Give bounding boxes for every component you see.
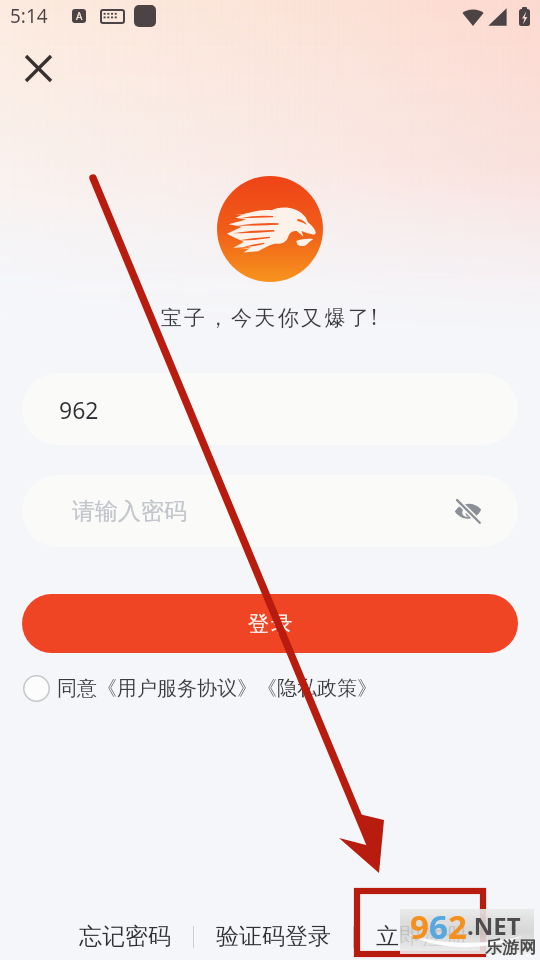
staticText: 6 (429, 904, 448, 949)
staticText: 9 (410, 904, 429, 949)
button[interactable]: 962 (22, 373, 518, 445)
button[interactable]: 登录 (22, 594, 518, 653)
button[interactable]: 验证码登录 (194, 914, 353, 959)
button[interactable]: Show password (446, 489, 490, 533)
staticText: 同意《用户服务协议》《隐私政策》 (57, 676, 377, 701)
staticText: 乐游网 (485, 937, 536, 958)
staticText: 登录 (247, 611, 293, 637)
staticText: 宝子，今天你又爆了! (0, 303, 540, 332)
button[interactable]: 同意《用户服务协议》《隐私政策》 (23, 675, 377, 702)
staticText: 请输入密码 (72, 497, 187, 526)
button[interactable]: Close (14, 44, 62, 92)
staticText: A (76, 9, 83, 23)
staticText: 962 (59, 394, 99, 425)
staticText: .NET (467, 909, 521, 942)
staticText: 5:14 (10, 3, 48, 29)
button[interactable]: 立即注册 (354, 914, 490, 959)
button[interactable]: 忘记密码 (57, 914, 193, 959)
staticText: 2 (448, 904, 467, 949)
button[interactable]: 请输入密码 (22, 475, 518, 547)
